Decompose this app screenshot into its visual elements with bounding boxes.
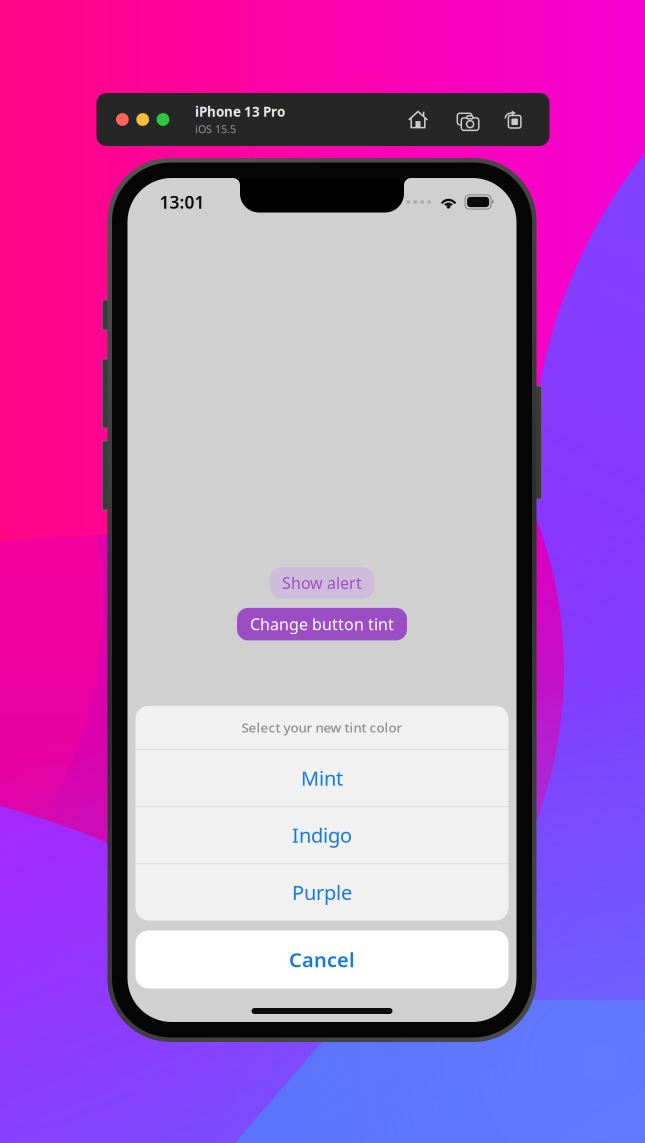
staticText: iOS 15.5 <box>195 122 236 136</box>
staticText: Show alert <box>282 572 362 593</box>
button[interactable]: Show alert <box>270 567 374 598</box>
button[interactable]: Screenshot <box>455 110 477 128</box>
button[interactable]: Home <box>408 110 428 128</box>
staticText: Change button tint <box>250 613 394 635</box>
staticText: iPhone 13 Pro <box>195 103 285 120</box>
staticText: Mint <box>301 765 343 791</box>
button[interactable]: Cancel <box>135 930 508 988</box>
button[interactable]: Indigo <box>135 807 508 863</box>
button[interactable]: Mint <box>135 750 508 806</box>
button[interactable]: Record screen <box>504 110 522 128</box>
staticText: Indigo <box>292 822 352 848</box>
staticText: Select your new tint color <box>241 718 402 736</box>
button[interactable]: Purple <box>135 864 508 920</box>
staticText: Purple <box>292 879 352 906</box>
staticText: 13:01 <box>159 190 204 213</box>
button[interactable]: Change button tint <box>237 608 407 640</box>
staticText: Cancel <box>289 946 355 973</box>
